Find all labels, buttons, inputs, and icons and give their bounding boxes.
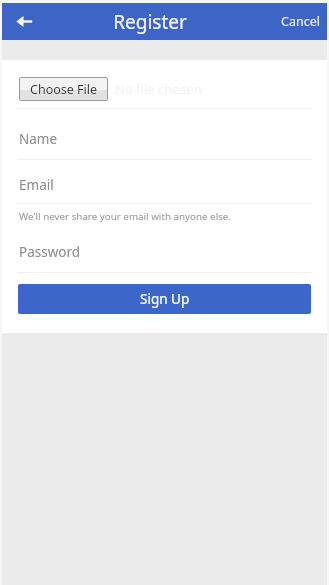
staticText: Name [19, 130, 58, 148]
button[interactable]: Back [2, 3, 46, 40]
staticText: We'll never share your email with anyone… [19, 210, 232, 223]
staticText: Choose File [30, 81, 98, 98]
button[interactable]: Sign Up [18, 284, 311, 314]
staticText: Cancel [281, 13, 320, 30]
staticText: Email [19, 176, 54, 194]
button[interactable]: Email [2, 176, 327, 194]
staticText: No file chosen [115, 80, 202, 98]
button[interactable]: Cancel [274, 3, 327, 40]
staticText: Sign Up [140, 290, 190, 308]
staticText: Register [113, 9, 187, 35]
staticText: Password [19, 243, 81, 261]
button[interactable]: Password [2, 243, 327, 261]
button[interactable]: Name [2, 130, 327, 148]
button[interactable]: Choose File [19, 77, 108, 101]
